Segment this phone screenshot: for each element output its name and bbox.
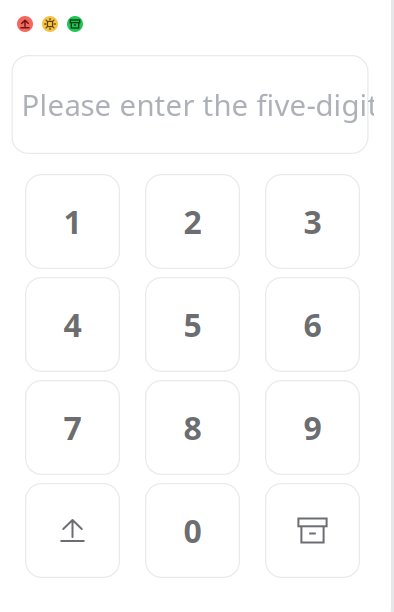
- button[interactable]: 1: [25, 174, 120, 269]
- button[interactable]: Submit: [25, 483, 120, 578]
- staticText: 4: [63, 303, 81, 346]
- button[interactable]: Delete: [265, 483, 360, 578]
- staticText: 6: [303, 303, 321, 346]
- staticText: 7: [63, 406, 81, 449]
- staticText: 9: [303, 406, 321, 449]
- button[interactable]: 6: [265, 277, 360, 372]
- button[interactable]: 8: [145, 380, 240, 475]
- staticText: 2: [183, 200, 201, 243]
- button[interactable]: Brightness: [42, 16, 58, 32]
- button[interactable]: 0: [145, 483, 240, 578]
- button[interactable]: 2: [145, 174, 240, 269]
- button[interactable]: 4: [25, 277, 120, 372]
- button[interactable]: Archive: [67, 16, 83, 32]
- staticText: 0: [183, 509, 201, 552]
- staticText: Please enter the five-digit code: [21, 85, 394, 124]
- button[interactable]: 3: [265, 174, 360, 269]
- staticText: 1: [63, 200, 81, 243]
- staticText: 8: [183, 406, 201, 449]
- button[interactable]: 5: [145, 277, 240, 372]
- button[interactable]: 9: [265, 380, 360, 475]
- button[interactable]: 7: [25, 380, 120, 475]
- staticText: 3: [303, 200, 321, 243]
- button[interactable]: Please enter the five-digit code: [14, 55, 371, 154]
- button[interactable]: Upload: [17, 16, 33, 32]
- staticText: 5: [183, 303, 201, 346]
